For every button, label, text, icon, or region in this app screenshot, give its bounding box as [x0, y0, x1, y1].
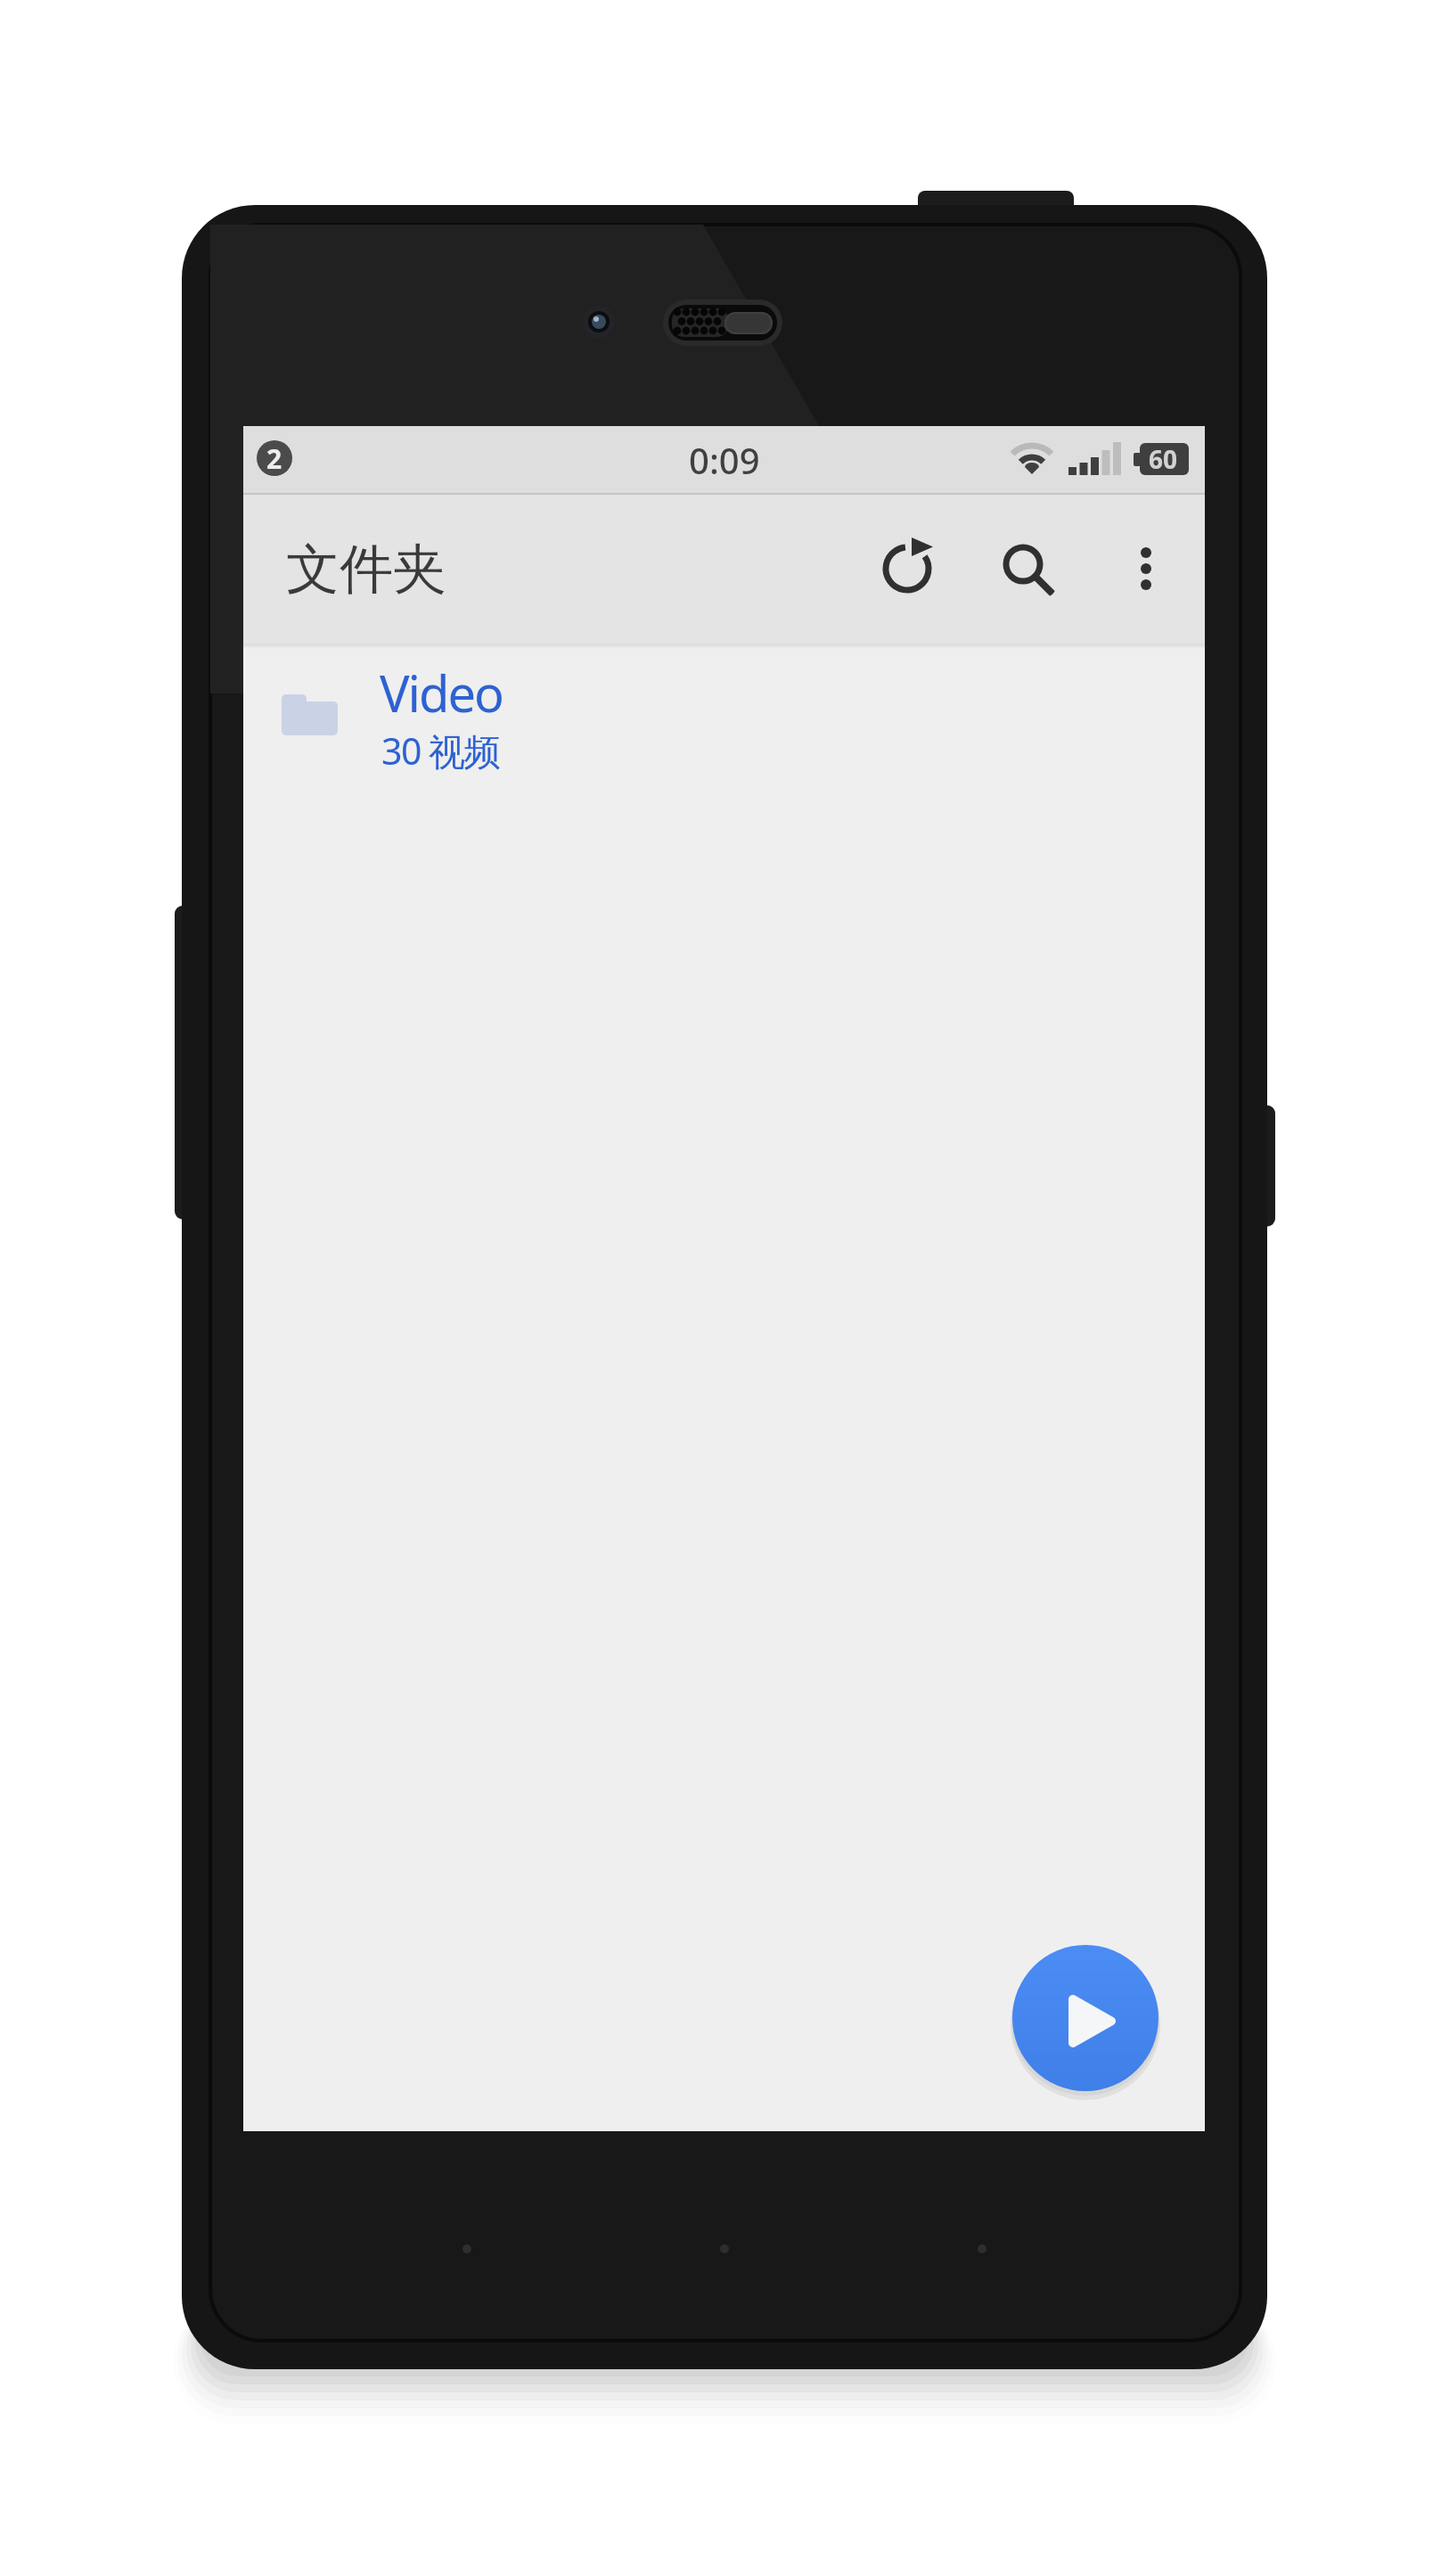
staticText: 0:09 [689, 436, 760, 484]
staticText: Video [380, 659, 503, 726]
staticText: 文件夹 [286, 536, 446, 603]
button[interactable]: Video [243, 649, 1205, 792]
button[interactable] [872, 533, 943, 604]
staticText: 60 [1149, 442, 1178, 476]
staticText: 30 视频 [381, 726, 500, 775]
button[interactable] [1110, 533, 1182, 604]
staticText: 2 [266, 440, 282, 476]
button[interactable] [992, 533, 1063, 604]
button[interactable] [1012, 1945, 1158, 2091]
